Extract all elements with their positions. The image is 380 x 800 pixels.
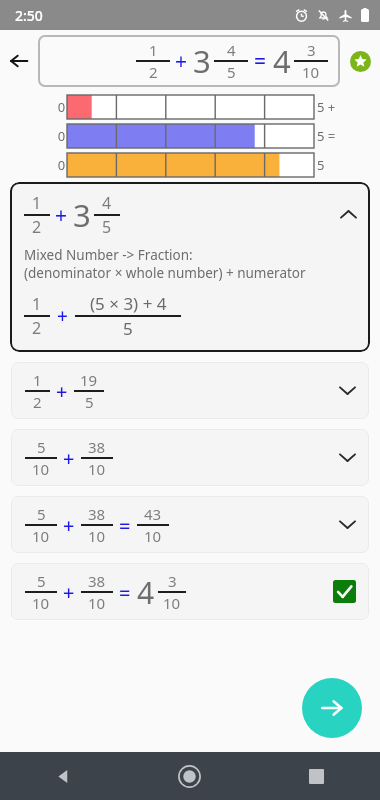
staticText: + [63,445,75,472]
staticText: (5 × 3) + 4 [90,292,167,315]
staticText: 3 [193,40,211,82]
staticText: 10 [144,526,162,546]
staticText: 5 [37,504,46,524]
staticText: 5 [227,62,236,82]
button[interactable]: Collapse [341,210,356,219]
button[interactable]: 5 [11,429,369,486]
staticText: 1 [149,40,158,60]
button[interactable]: Expand [340,520,355,529]
staticText: + [175,47,188,76]
staticText: = [119,579,131,606]
staticText: 3 [168,571,177,591]
staticText: 10 [88,526,106,546]
staticText: 0 [56,156,67,174]
staticText: 5 [85,392,94,412]
staticText: 10 [163,593,181,613]
staticText: 10 [32,459,50,479]
staticText: 5 [123,317,133,340]
staticText: + [55,201,68,230]
staticText: 43 [144,504,162,524]
staticText: + [57,303,68,329]
staticText: 0 [56,98,67,116]
button[interactable]: 5 [11,563,369,620]
staticText: 3 [307,40,316,60]
staticText: 10 [302,62,320,82]
staticText: 2 [149,62,158,82]
staticText: 3 [73,194,91,236]
staticText: 1 [32,192,42,214]
staticText: 10 [32,526,50,546]
staticText: + [63,512,75,539]
staticText: 2 [32,317,42,339]
staticText: + [56,378,68,405]
button[interactable]: Back [0,752,126,800]
staticText: 2 [33,392,42,412]
staticText: 0 [56,127,67,145]
staticText: = [119,512,131,539]
button[interactable]: Recents [253,752,380,800]
staticText: Mixed Number -> Fraction: [24,246,193,264]
staticText: 5 [102,216,112,238]
button[interactable]: Correct [333,580,356,603]
staticText: 5 = [317,127,336,145]
staticText: 5 [317,156,325,174]
button[interactable]: 1 [11,362,369,419]
staticText: 10 [88,593,106,613]
button[interactable]: 1 [10,182,370,352]
staticText: = [254,47,267,76]
staticText: 5 + [317,98,336,116]
button[interactable]: Back [0,30,38,92]
staticText: 38 [88,571,106,591]
staticText: + [63,579,75,606]
staticText: 1 [33,370,42,390]
staticText: 5 [37,571,46,591]
staticText: 19 [80,370,98,390]
staticText: 2:50 [15,6,43,25]
staticText: 5 [37,437,46,457]
staticText: 4 [227,40,236,60]
staticText: 10 [88,459,106,479]
button[interactable]: Expand [340,386,355,395]
staticText: 4 [137,572,155,613]
staticText: 2 [32,216,42,238]
staticText: (denominator × whole number) + numerator [24,264,306,282]
button[interactable]: Home [126,752,253,800]
button[interactable]: 1 [38,35,340,87]
button[interactable]: Favourite [340,30,380,92]
button[interactable]: 5 [11,496,369,553]
staticText: 4 [273,40,291,82]
staticText: 4 [102,192,112,214]
staticText: 1 [32,293,42,315]
button[interactable]: Next [302,678,362,738]
staticText: 10 [32,593,50,613]
staticText: 38 [88,437,106,457]
staticText: 38 [88,504,106,524]
button[interactable]: Expand [340,453,355,462]
